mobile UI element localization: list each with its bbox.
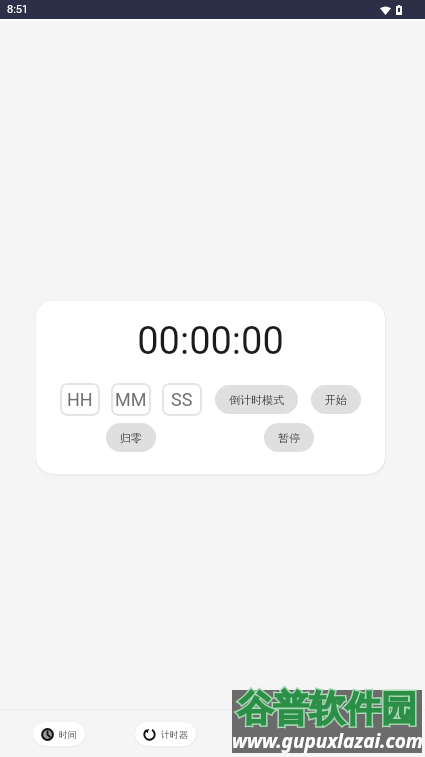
button[interactable]: HH	[60, 383, 100, 416]
button[interactable]: 倒计时模式	[215, 385, 298, 414]
button[interactable]: Clock	[33, 722, 85, 746]
staticText: 时间	[59, 729, 77, 740]
staticText: www.gupuxlazai.com	[232, 728, 422, 754]
button[interactable]: 开始	[311, 385, 361, 414]
button[interactable]: 归零	[106, 423, 156, 452]
staticText: 00:00:00	[137, 319, 284, 364]
other: Battery	[396, 5, 402, 15]
other: Clock	[41, 728, 54, 741]
other: Timer	[143, 728, 156, 741]
staticText: SS	[171, 389, 193, 410]
staticText: 谷普软件园	[237, 686, 417, 731]
staticText: 归零	[120, 431, 142, 445]
button[interactable]: MM	[111, 383, 151, 416]
staticText: 计时器	[161, 729, 188, 740]
other: Wi-Fi	[380, 6, 391, 15]
staticText: HH	[67, 389, 93, 410]
button[interactable]: SS	[162, 383, 202, 416]
staticText: 谷普软件园	[237, 686, 417, 731]
staticText: MM	[115, 389, 147, 410]
staticText: 暂停	[278, 431, 300, 445]
button[interactable]: Timer	[135, 722, 196, 746]
button[interactable]: 暂停	[264, 423, 314, 452]
staticText: 倒计时模式	[229, 393, 284, 407]
staticText: 8:51	[7, 3, 29, 16]
staticText: 开始	[325, 393, 347, 407]
